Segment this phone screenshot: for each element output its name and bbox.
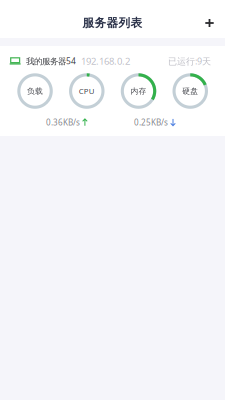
staticText: 硬盘 — [182, 86, 198, 96]
staticText: 已运行:9天 — [168, 55, 211, 67]
button[interactable]: 我的服务器54 — [0, 46, 225, 136]
staticText: CPU — [79, 86, 95, 96]
staticText: 0.25KB/s — [134, 117, 168, 128]
staticText: 0.36KB/s — [46, 117, 80, 128]
staticText: 我的服务器54 — [26, 55, 76, 67]
staticText: 内存 — [130, 86, 146, 96]
staticText: 192.168.0.2 — [81, 55, 130, 67]
button[interactable]: Add server — [196, 9, 223, 36]
staticText: 服务器列表 — [82, 16, 142, 30]
staticText: 负载 — [27, 86, 43, 96]
